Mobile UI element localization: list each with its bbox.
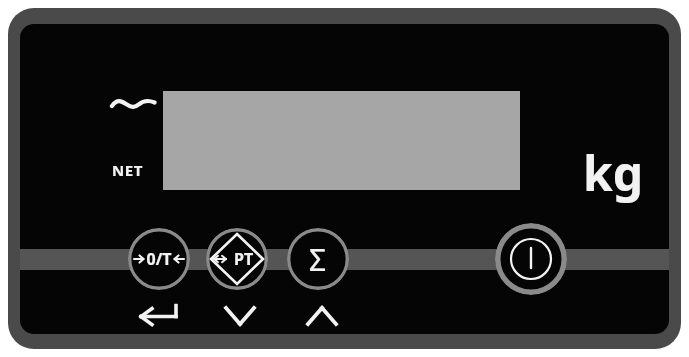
staticText: Σ bbox=[309, 239, 327, 280]
staticText: kg bbox=[583, 140, 644, 205]
staticText: NET bbox=[112, 160, 144, 180]
button[interactable]: Zero / Tare bbox=[128, 228, 190, 290]
button[interactable]: Total bbox=[287, 228, 349, 290]
button[interactable]: Preset tare bbox=[206, 228, 268, 290]
staticText: 0/T bbox=[146, 248, 172, 270]
staticText: PT bbox=[234, 248, 254, 270]
button[interactable]: Power bbox=[495, 223, 567, 295]
